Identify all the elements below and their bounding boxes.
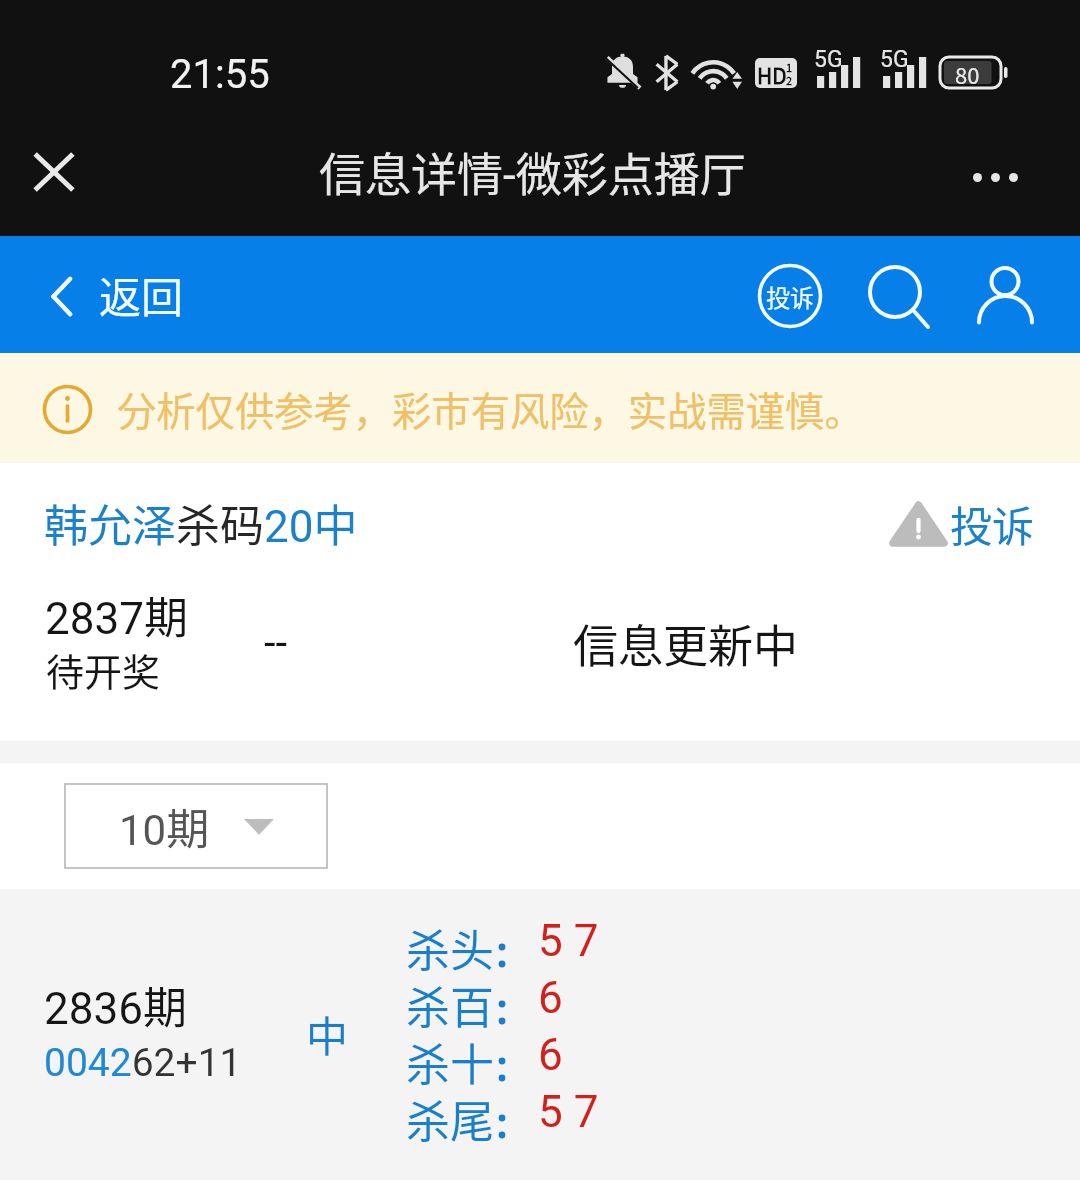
- button[interactable]: Profile: [968, 255, 1044, 331]
- staticText: 杀尾: [406, 1087, 494, 1151]
- staticText: --: [264, 618, 288, 667]
- button[interactable]: Close: [24, 142, 84, 202]
- staticText: 5 7: [538, 1086, 599, 1138]
- staticText: 杀头: [406, 916, 494, 980]
- button[interactable]: More options: [960, 142, 1030, 212]
- button[interactable]: 10期: [64, 783, 328, 869]
- staticText: 韩允泽杀码20中: [44, 491, 358, 555]
- staticText: 6: [538, 972, 563, 1024]
- staticText: 待开奖: [46, 642, 161, 697]
- staticText: 5 7: [538, 915, 599, 967]
- staticText: HD: [757, 60, 787, 88]
- staticText: 80: [955, 58, 980, 90]
- button[interactable]: 返回: [45, 258, 184, 330]
- staticText: 返回: [99, 264, 184, 325]
- staticText: 004262+11: [44, 1040, 242, 1086]
- staticText: 中: [306, 1003, 349, 1064]
- staticText: 投诉: [766, 279, 814, 314]
- staticText: 5G: [814, 46, 843, 73]
- staticText: 6: [538, 1029, 563, 1081]
- staticText: 分析仅供参考，彩市有风险，实战需谨慎。: [117, 380, 864, 437]
- staticText: 10期: [119, 795, 210, 857]
- staticText: 杀百: [406, 973, 494, 1037]
- staticText: 2837期: [45, 583, 188, 647]
- button[interactable]: Search: [860, 255, 940, 335]
- staticText: 5G: [880, 46, 909, 73]
- button[interactable]: 投诉: [890, 493, 1035, 553]
- staticText: 21:55: [170, 51, 270, 98]
- staticText: 投诉: [950, 493, 1035, 553]
- staticText: 信息详情-微彩点播厅: [319, 138, 746, 205]
- button[interactable]: Report: [752, 258, 828, 334]
- staticText: 杀十: [406, 1030, 494, 1094]
- staticText: 信息更新中: [573, 611, 799, 676]
- staticText: 2: [786, 72, 793, 88]
- staticText: 2836期: [44, 973, 187, 1037]
- staticText: 1: [786, 59, 793, 75]
